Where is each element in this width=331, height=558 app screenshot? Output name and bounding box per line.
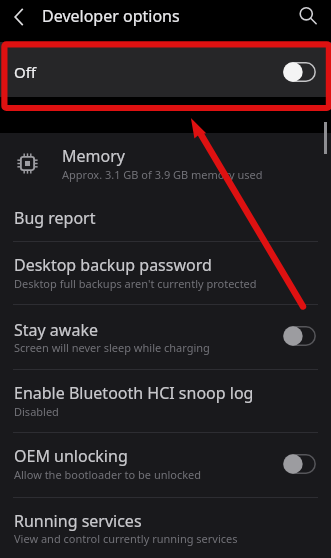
button[interactable]: OEM unlocking (0, 433, 331, 497)
button[interactable]: Desktop backup password (0, 242, 331, 304)
staticText: Screen will never sleep while charging (14, 340, 210, 355)
button[interactable]: Bug report (0, 189, 331, 241)
staticText: Bug report (14, 207, 96, 229)
staticText: Approx. 3.1 GB of 3.9 GB memory used (62, 167, 263, 182)
staticText: Running services (14, 510, 142, 532)
button[interactable]: Enable Bluetooth HCI snoop log (0, 370, 331, 432)
staticText: Enable Bluetooth HCI snoop log (14, 382, 254, 404)
staticText: Developer options (42, 5, 180, 27)
staticText: OEM unlocking (14, 445, 128, 467)
staticText: Allow the bootloader to be unlocked (14, 467, 202, 482)
button[interactable]: Off (0, 42, 331, 97)
button[interactable]: Stay awake (0, 305, 331, 369)
staticText: Stay awake (14, 319, 98, 341)
staticText: Desktop backup password (14, 254, 212, 276)
button[interactable]: Search (293, 1, 323, 31)
button[interactable]: Memory (0, 133, 331, 189)
button[interactable]: Running services (0, 498, 331, 558)
staticText: View and control currently running servi… (14, 531, 238, 546)
button[interactable]: Navigate up (4, 2, 34, 32)
staticText: Memory (62, 145, 125, 167)
staticText: Off (14, 62, 37, 82)
staticText: Desktop full backups aren't currently pr… (14, 276, 257, 291)
staticText: Disabled (14, 404, 59, 419)
